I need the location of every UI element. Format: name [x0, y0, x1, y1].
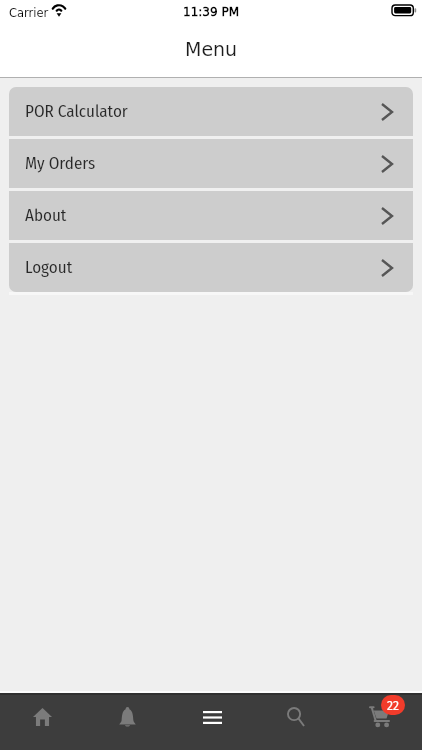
button[interactable]: POR Calculator — [9, 87, 413, 136]
staticText: POR Calculator — [25, 101, 128, 121]
staticText: 22 — [387, 697, 399, 713]
staticText: Logout — [25, 257, 73, 277]
button[interactable]: My Orders — [9, 139, 413, 188]
button[interactable]: Home — [0, 693, 85, 740]
staticText: 11:39 PM — [183, 5, 239, 19]
staticText: Carrier — [9, 6, 49, 19]
staticText: My Orders — [25, 153, 96, 173]
staticText: About — [25, 205, 67, 225]
button[interactable]: Logout — [9, 243, 413, 292]
staticText: Menu — [185, 38, 238, 60]
button[interactable]: Notifications — [85, 693, 170, 740]
button[interactable]: Menu — [170, 693, 254, 740]
button[interactable]: About — [9, 191, 413, 240]
button[interactable]: Cart, 22 items — [338, 693, 422, 740]
button[interactable]: Search — [254, 693, 338, 740]
